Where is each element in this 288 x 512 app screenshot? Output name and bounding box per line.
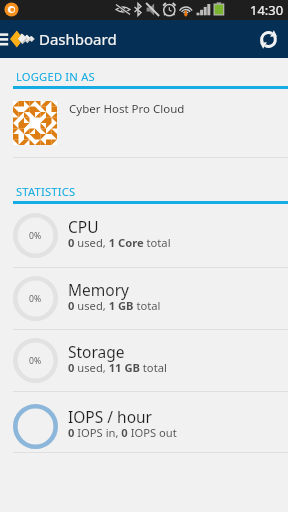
staticText: 14:30 <box>250 1 284 19</box>
button[interactable]: 0% <box>0 268 288 330</box>
button[interactable]: Cyber Host Pro Cloud <box>0 89 288 157</box>
staticText: IOPS / hour <box>68 406 153 427</box>
staticText: 0% <box>29 230 42 242</box>
staticText: Storage <box>68 341 125 362</box>
staticText: LOGGED IN AS <box>16 69 95 84</box>
staticText: 0% <box>29 355 42 367</box>
staticText: Dashboard <box>39 29 117 49</box>
staticText: 0 used, 1 GB total <box>68 298 161 313</box>
staticText: Memory <box>68 279 129 300</box>
staticText: CPU <box>68 216 99 237</box>
button[interactable]: 0% <box>0 204 288 268</box>
button[interactable]: 0% <box>0 330 288 392</box>
staticText: 0 IOPS in, 0 IOPS out <box>68 425 177 440</box>
staticText: Cyber Host Pro Cloud <box>69 101 185 117</box>
button[interactable]: Refresh <box>248 20 288 58</box>
staticText: 0 used, 1 Core total <box>68 235 171 250</box>
staticText: 0 used, 11 GB total <box>68 360 167 375</box>
staticText: STATISTICS <box>16 184 76 199</box>
button[interactable]: IOPS / hour <box>0 392 288 453</box>
staticText: 0% <box>29 293 42 305</box>
button[interactable]: Open navigation menu <box>0 20 37 58</box>
